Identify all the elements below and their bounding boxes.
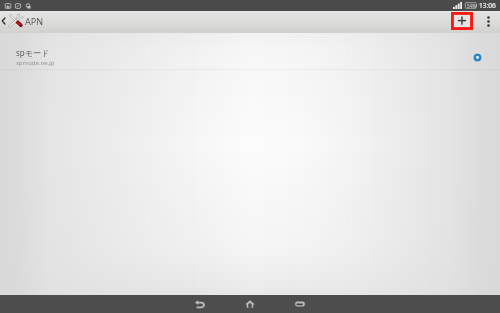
button[interactable]: Add APN: [451, 12, 473, 30]
staticText: 13:06: [479, 1, 496, 10]
button[interactable]: spモード: [0, 44, 500, 69]
button[interactable]: Recent apps: [283, 295, 317, 313]
staticText: spモード: [16, 47, 50, 58]
staticText: spmode.ne.jp: [16, 59, 55, 67]
button[interactable]: More options: [482, 11, 494, 31]
staticText: 54%: [467, 3, 476, 9]
button[interactable]: Home: [233, 295, 267, 313]
staticText: APN: [25, 15, 44, 27]
button[interactable]: APN: [0, 14, 47, 28]
button[interactable]: Back: [183, 295, 217, 313]
